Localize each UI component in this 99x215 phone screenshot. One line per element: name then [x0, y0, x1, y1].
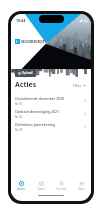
staticText: Nr. 01: [15, 102, 23, 106]
staticText: Nr. 02: [15, 115, 23, 119]
staticText: Contact: [56, 187, 67, 191]
staticText: Opdrachtbevestiging 2021: [15, 109, 60, 114]
staticText: Filter: [73, 83, 82, 88]
staticText: Nr. 03: [15, 128, 23, 132]
button[interactable]: Contact: [51, 178, 71, 194]
button[interactable]: Acties: [11, 178, 31, 194]
button[interactable]: Definitieve jaarrekening: [11, 120, 91, 133]
staticText: MOOIBEDRIJF: [21, 39, 45, 44]
button[interactable]: Filter: [72, 81, 87, 90]
button[interactable]: Taken: [31, 178, 51, 194]
staticText: Onvoldoende december 2020: [15, 96, 65, 101]
staticText: Definitieve jaarrekening: [15, 122, 56, 127]
button[interactable]: Upload: [15, 69, 36, 77]
staticText: 10:44: [16, 18, 26, 23]
staticText: Acties: [15, 80, 37, 90]
staticText: Meer: [78, 187, 85, 191]
button[interactable]: Opdrachtbevestiging 2021: [11, 107, 91, 120]
button[interactable]: Meer: [71, 178, 91, 194]
staticText: groep: [46, 40, 55, 44]
staticText: Upload: [22, 71, 33, 75]
button[interactable]: Onvoldoende december 2020: [11, 94, 91, 107]
staticText: Acties: [17, 187, 25, 191]
staticText: Taken: [37, 187, 45, 191]
